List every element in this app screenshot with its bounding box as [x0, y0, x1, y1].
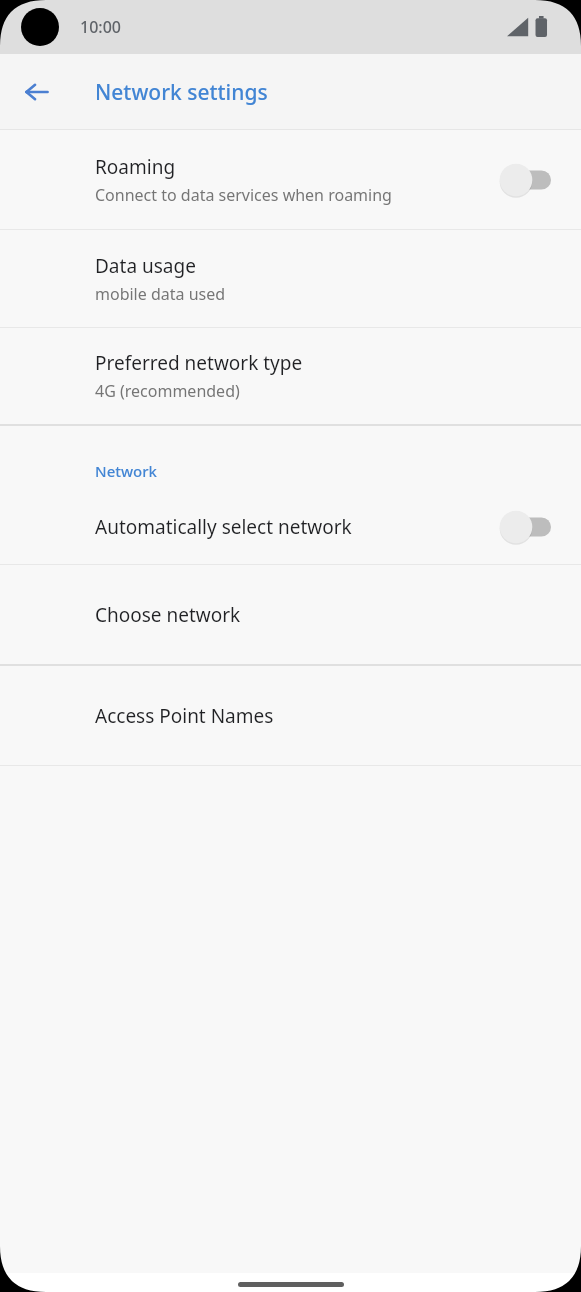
staticText: Network settings	[95, 78, 268, 107]
staticText: Automatically select network	[95, 514, 352, 540]
staticText: Preferred network type	[95, 350, 303, 376]
staticText: Data usage	[95, 253, 196, 279]
button[interactable]: Access Point Names	[0, 666, 581, 765]
staticText: 10:00	[80, 16, 121, 38]
button[interactable]: Choose network	[0, 565, 581, 664]
staticText: 4G (recommended)	[95, 380, 240, 402]
button[interactable]: Toggle Automatically select network	[499, 505, 557, 549]
button[interactable]: Toggle Roaming	[499, 158, 557, 202]
staticText: Choose network	[95, 602, 241, 628]
button[interactable]: Data usage	[0, 230, 581, 327]
button[interactable]: Preferred network type	[0, 328, 581, 424]
button[interactable]: Automatically select network	[0, 489, 581, 564]
staticText: Connect to data services when roaming	[95, 184, 392, 206]
staticText: mobile data used	[95, 283, 226, 305]
staticText: Network	[95, 461, 157, 481]
button[interactable]: Roaming	[0, 130, 581, 229]
button[interactable]: Back	[13, 68, 61, 116]
staticText: Roaming	[95, 154, 176, 180]
staticText: Access Point Names	[95, 703, 274, 729]
